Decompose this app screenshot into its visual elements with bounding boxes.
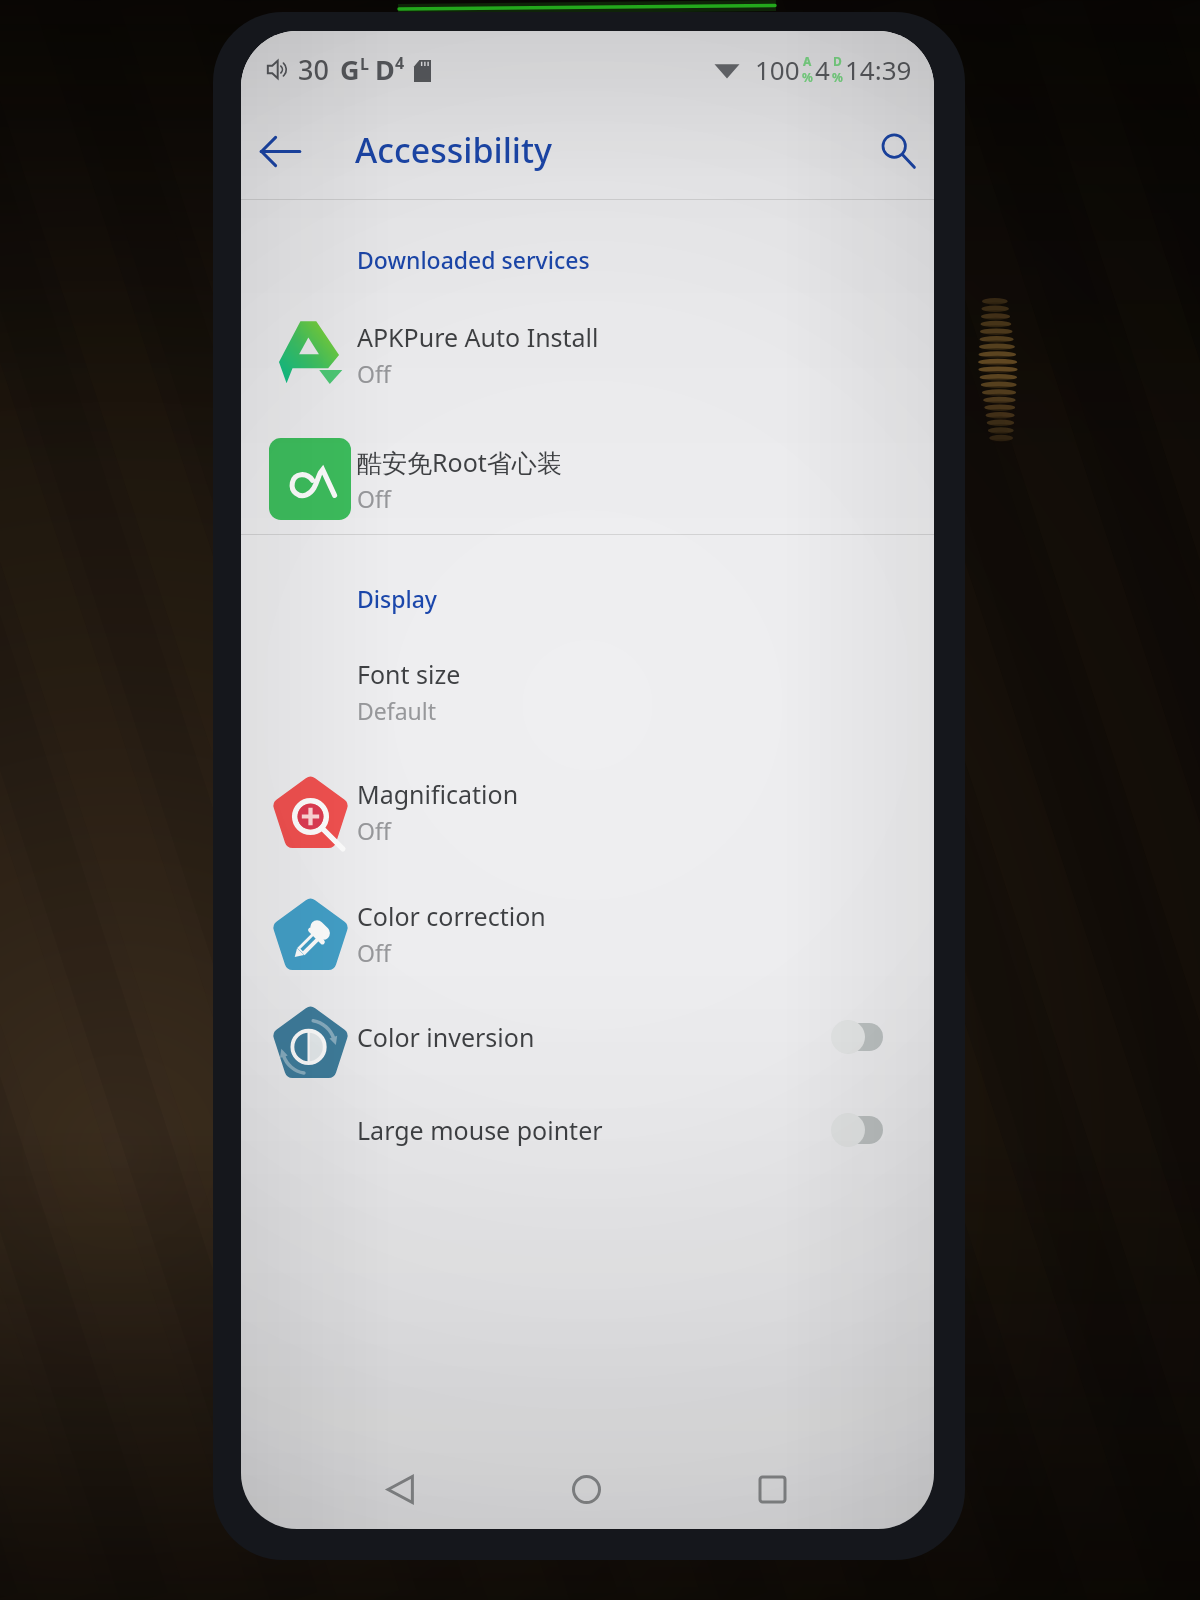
staticText: Off: [357, 815, 391, 846]
button[interactable]: Color correction: [241, 870, 934, 982]
button[interactable]: Toggle Large mouse pointer: [831, 1112, 883, 1148]
button[interactable]: 酷安免Root省心装: [241, 416, 934, 528]
staticText: G: [340, 51, 360, 88]
staticText: Off: [357, 358, 391, 389]
button[interactable]: Recents: [742, 1459, 802, 1519]
staticText: 30: [298, 51, 329, 88]
button[interactable]: Home: [556, 1459, 616, 1519]
staticText: Display: [357, 583, 437, 614]
staticText: A: [803, 53, 812, 69]
button[interactable]: APKPure Auto Install: [241, 291, 934, 403]
staticText: 4: [395, 52, 405, 74]
button[interactable]: Magnification: [241, 748, 934, 860]
button[interactable]: Back: [249, 120, 311, 182]
staticText: Default: [357, 695, 437, 726]
staticText: Large mouse pointer: [357, 1113, 603, 1147]
button[interactable]: Large mouse pointer: [241, 1084, 934, 1176]
staticText: Font size: [357, 657, 461, 691]
staticText: 4: [815, 52, 830, 87]
staticText: Off: [357, 937, 391, 968]
staticText: 14:39: [845, 52, 912, 87]
staticText: Downloaded services: [357, 244, 590, 275]
staticText: Magnification: [357, 777, 519, 811]
staticText: 100: [755, 52, 800, 87]
staticText: Accessibility: [355, 127, 552, 173]
staticText: Color correction: [357, 899, 546, 933]
staticText: D: [375, 51, 395, 88]
staticText: Color inversion: [357, 1020, 535, 1054]
staticText: %: [832, 69, 843, 85]
button[interactable]: Font size: [241, 628, 934, 740]
button[interactable]: Toggle Color inversion: [831, 1019, 883, 1055]
button[interactable]: Color inversion: [241, 991, 934, 1083]
staticText: Off: [357, 483, 391, 514]
button[interactable]: Search: [867, 120, 929, 182]
staticText: 酷安免Root省心装: [357, 445, 562, 479]
staticText: D: [833, 53, 842, 69]
staticText: APKPure Auto Install: [357, 320, 599, 354]
staticText: L: [360, 53, 369, 75]
button[interactable]: Back: [370, 1459, 430, 1519]
staticText: %: [802, 69, 813, 85]
